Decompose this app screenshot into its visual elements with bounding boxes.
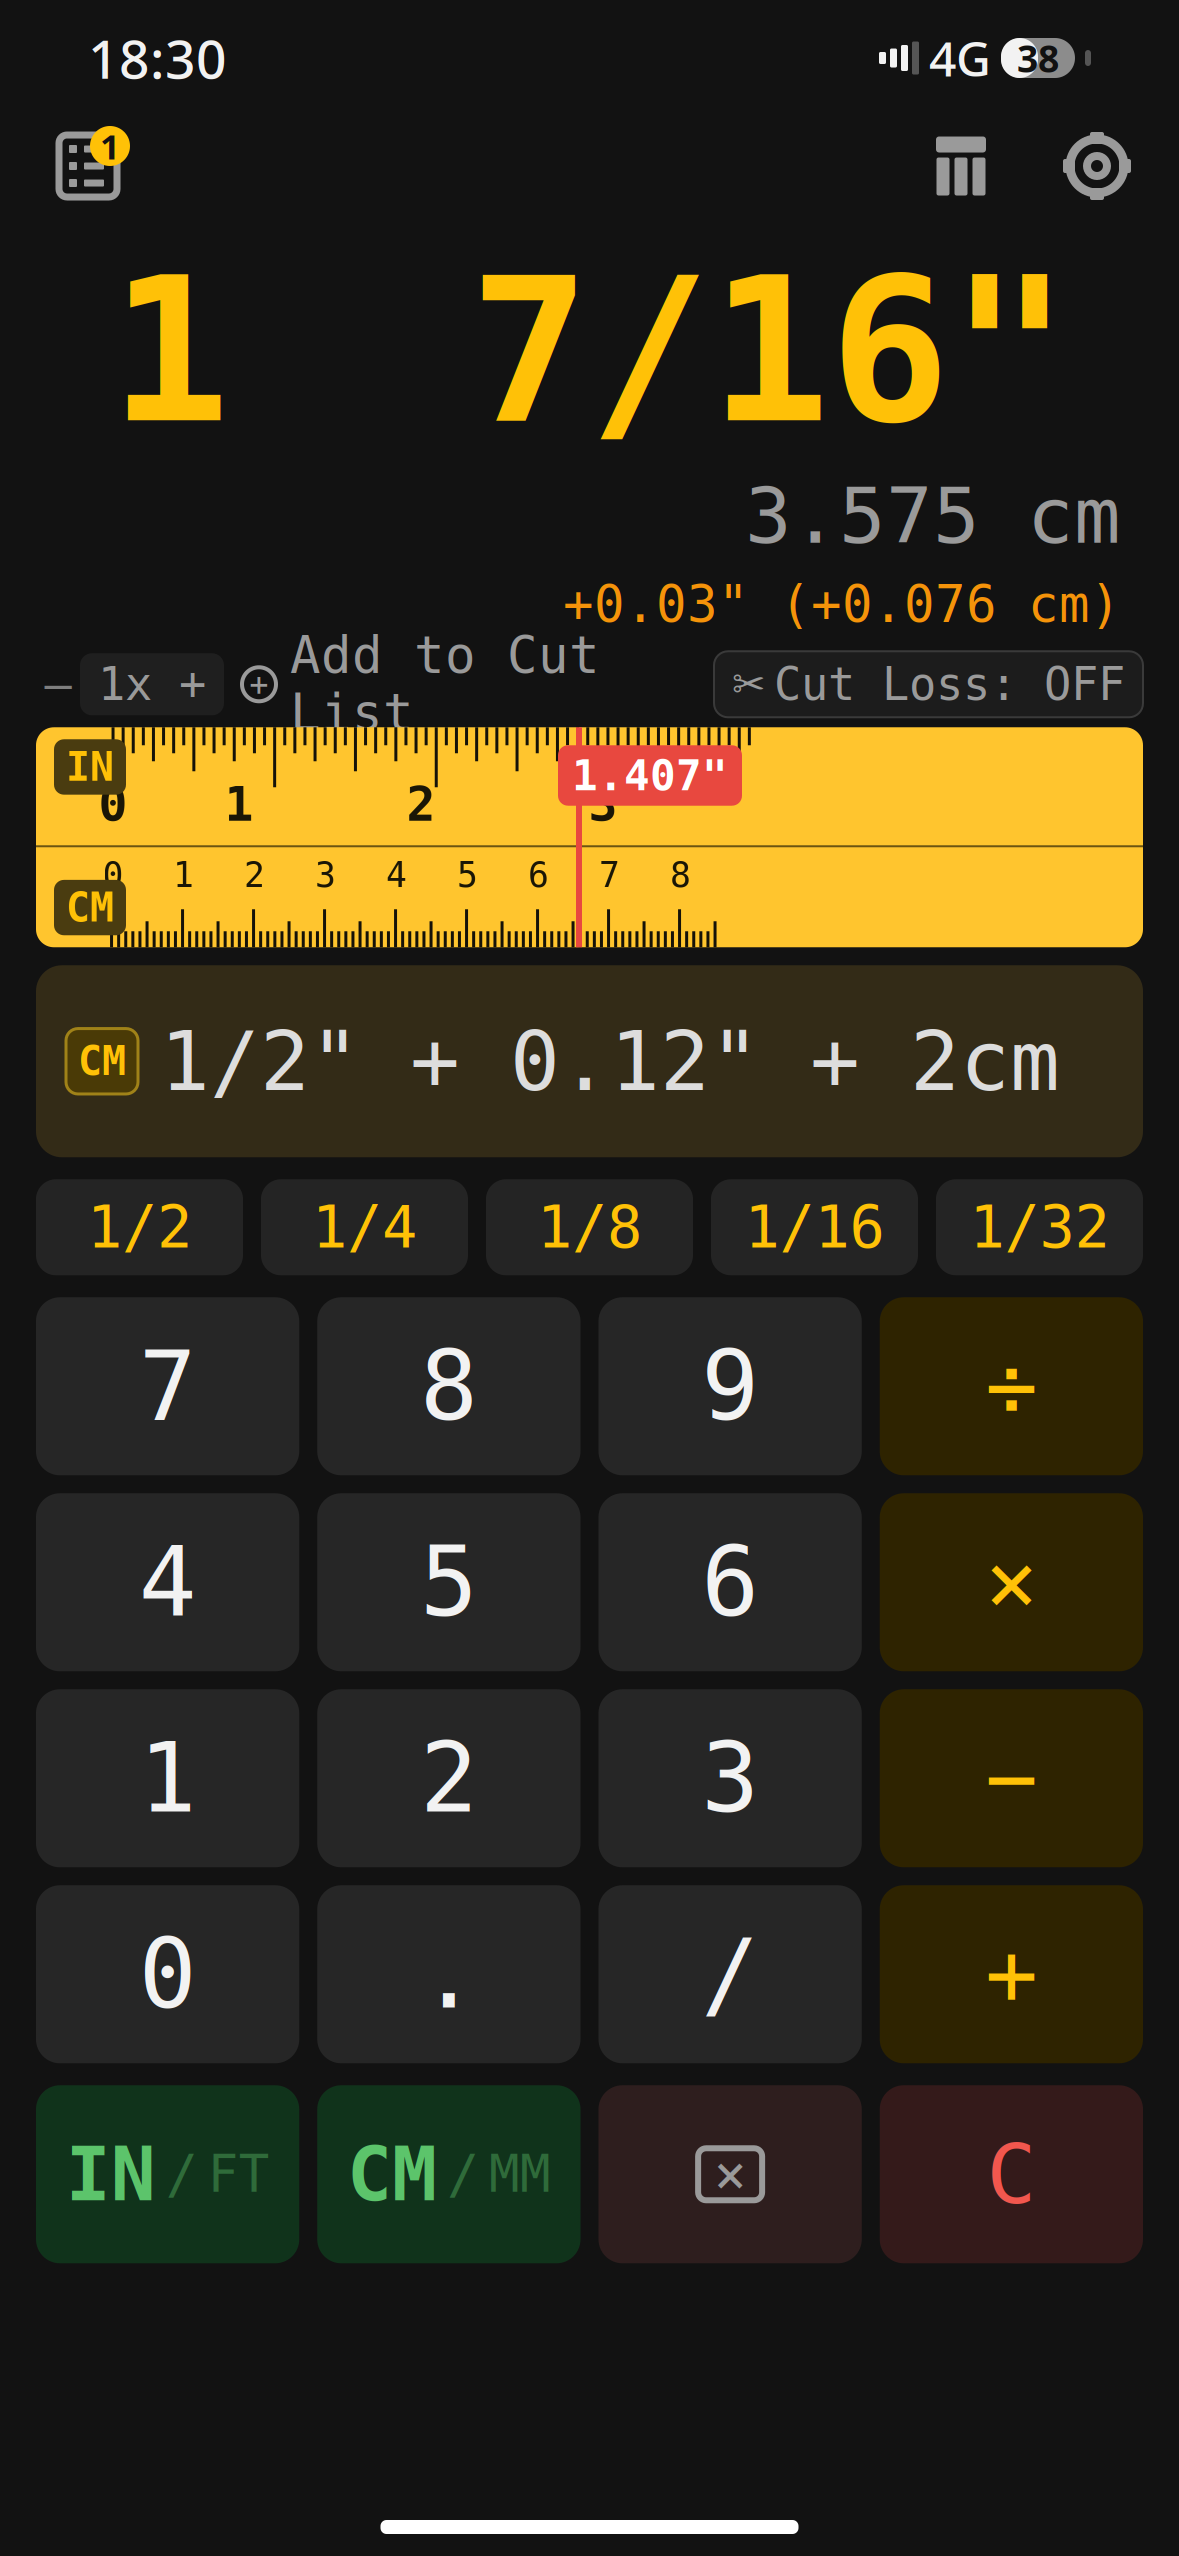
staticText: /	[166, 2144, 198, 2204]
staticText: 5	[420, 1528, 478, 1637]
staticText: 7	[139, 1332, 197, 1441]
button[interactable]: 0	[36, 1885, 299, 2063]
button[interactable]: 1/16	[711, 1179, 918, 1275]
staticText: IN	[66, 2132, 156, 2217]
staticText: –	[44, 659, 71, 710]
staticText: 3	[588, 777, 617, 831]
staticText: 2	[420, 1724, 478, 1833]
staticText: 6	[528, 855, 549, 895]
staticText: 6	[701, 1528, 759, 1637]
button[interactable]: 7	[36, 1297, 299, 1475]
staticText: 2	[406, 777, 435, 831]
button[interactable]: ✂	[714, 651, 1143, 717]
staticText: ×	[985, 1532, 1038, 1632]
staticText: FT	[208, 2145, 270, 2203]
staticText: Cut Loss: OFF	[774, 659, 1125, 710]
button[interactable]: /	[598, 1885, 862, 2063]
button[interactable]: 1/4	[261, 1179, 468, 1275]
button[interactable]: 1/32	[936, 1179, 1143, 1275]
button[interactable]: +	[880, 1885, 1143, 2063]
button[interactable]: Cut list, 1 item	[40, 122, 136, 210]
staticText: 5	[457, 855, 478, 895]
staticText: 1.407"	[572, 751, 728, 800]
button[interactable]: 1/2	[36, 1179, 243, 1275]
staticText: 7	[599, 855, 620, 895]
staticText: 4	[386, 855, 407, 895]
button[interactable]: Settings	[1055, 124, 1139, 208]
staticText: 1	[224, 777, 253, 831]
staticText: 4G	[929, 26, 991, 90]
staticText: −	[985, 1728, 1038, 1828]
staticText: 1/2" + 0.12" + 2cm	[160, 1014, 1060, 1108]
staticText: Add to Cut List	[290, 627, 600, 742]
staticText: /	[701, 1920, 759, 2029]
staticText: 1	[100, 123, 120, 169]
button[interactable]: −	[880, 1689, 1143, 1867]
staticText: CM	[347, 2132, 437, 2217]
staticText: MM	[489, 2145, 551, 2203]
button[interactable]: 5	[317, 1493, 580, 1671]
staticText: 9	[701, 1332, 759, 1441]
button[interactable]: CM	[317, 2085, 580, 2263]
button[interactable]: 1	[36, 1689, 299, 1867]
staticText: /	[447, 2144, 479, 2204]
staticText: 8	[420, 1332, 478, 1441]
staticText: 4	[139, 1528, 197, 1637]
staticText: ✂	[732, 662, 766, 707]
button[interactable]: 3	[598, 1689, 862, 1867]
button[interactable]: IN	[36, 2085, 299, 2263]
staticText: 1/32	[969, 1194, 1109, 1261]
button[interactable]: +	[224, 653, 618, 715]
button[interactable]: 9	[598, 1297, 862, 1475]
button[interactable]: 6	[598, 1493, 862, 1671]
staticText: 1/4	[312, 1194, 417, 1261]
staticText: +0.03" (+0.076 cm)	[563, 576, 1121, 633]
button[interactable]: ÷	[880, 1297, 1143, 1475]
staticText: 1/16	[744, 1194, 884, 1261]
staticText: 3.575 cm	[745, 472, 1121, 560]
button[interactable]: 1/8	[486, 1179, 693, 1275]
staticText: .	[420, 1920, 478, 2029]
staticText: ×	[714, 2137, 746, 2211]
staticText: 0	[98, 777, 127, 831]
staticText: 8	[670, 855, 691, 895]
staticText: 1x +	[98, 659, 206, 710]
staticText: 1	[139, 1724, 197, 1833]
staticText: CM	[78, 1039, 126, 1084]
staticText: 18:30	[88, 23, 227, 93]
staticText: ÷	[985, 1336, 1038, 1436]
staticText: 0	[102, 855, 123, 895]
staticText: +	[985, 1924, 1038, 2024]
button[interactable]: C	[880, 2085, 1143, 2263]
button[interactable]: 1x +	[80, 653, 224, 715]
staticText: +	[249, 661, 269, 707]
staticText: 2	[244, 855, 265, 895]
button[interactable]: Decrease quantity	[36, 655, 80, 713]
staticText: 0	[139, 1920, 197, 2029]
staticText: 1 7/16"	[109, 237, 1069, 464]
button[interactable]: ×	[880, 1493, 1143, 1671]
button[interactable]: .	[317, 1885, 580, 2063]
staticText: 3	[315, 855, 336, 895]
staticText: 1/2	[87, 1194, 192, 1261]
button[interactable]: 2	[317, 1689, 580, 1867]
button[interactable]: Columns	[921, 125, 1001, 207]
staticText: 1/8	[537, 1194, 642, 1261]
staticText: 38	[1017, 33, 1059, 83]
button[interactable]: 4	[36, 1493, 299, 1671]
staticText: IN	[66, 744, 114, 790]
staticText: 1	[173, 855, 194, 895]
staticText: CM	[66, 885, 114, 930]
staticText: 3	[701, 1724, 759, 1833]
button[interactable]: 8	[317, 1297, 580, 1475]
staticText: C	[986, 2127, 1036, 2221]
button[interactable]: Backspace	[598, 2085, 862, 2263]
